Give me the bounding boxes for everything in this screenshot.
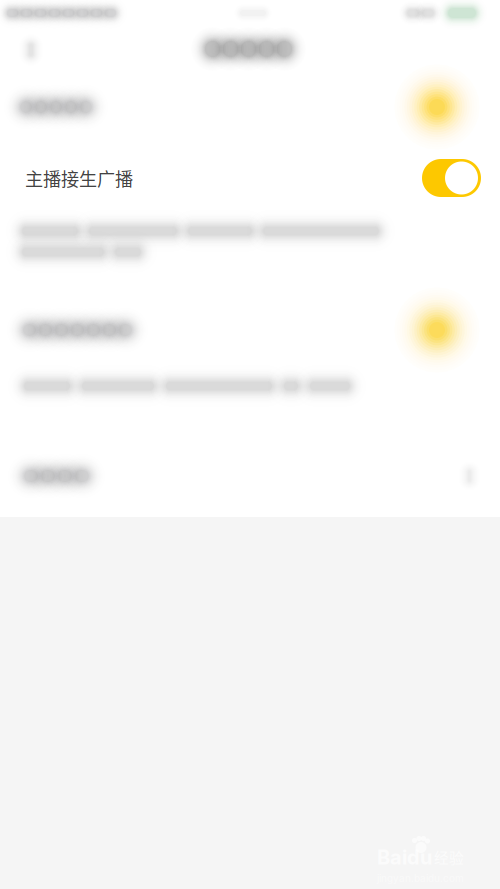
button[interactable] (0, 47, 500, 167)
button[interactable] (0, 421, 500, 531)
button[interactable] (0, 270, 500, 390)
button[interactable]: 主播接生广播 (0, 144, 500, 212)
button[interactable]: Back (7, 26, 55, 74)
staticText: 主播接生广播 (25, 165, 133, 191)
